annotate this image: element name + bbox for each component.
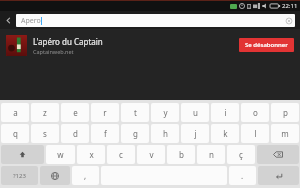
- staticText: n: [209, 149, 214, 160]
- staticText: q: [13, 128, 18, 139]
- button[interactable]: i: [211, 103, 239, 122]
- button[interactable]: L'apéro du Captain: [0, 31, 300, 59]
- button[interactable]: .: [229, 166, 256, 185]
- staticText: Apero: [21, 16, 41, 26]
- button[interactable]: ?123: [1, 166, 38, 185]
- button[interactable]: p: [271, 103, 299, 122]
- button[interactable]: v: [137, 145, 165, 164]
- button[interactable]: k: [211, 124, 239, 143]
- button[interactable]: Clear search: [282, 14, 295, 27]
- button[interactable]: Apero: [16, 14, 295, 27]
- staticText: m: [281, 128, 289, 139]
- staticText: o: [253, 107, 258, 118]
- button[interactable]: ,: [72, 166, 99, 185]
- button[interactable]: f: [91, 124, 119, 143]
- staticText: .: [241, 170, 244, 181]
- button[interactable]: Se désabonner: [239, 38, 294, 52]
- button[interactable]: a: [1, 103, 29, 122]
- staticText: v: [149, 149, 154, 160]
- button[interactable]: Shift: [1, 145, 44, 164]
- staticText: g: [133, 128, 138, 139]
- staticText: l: [254, 128, 257, 139]
- button[interactable]: g: [121, 124, 149, 143]
- staticText: ç: [239, 149, 243, 160]
- staticText: w: [57, 149, 64, 160]
- button[interactable]: w: [46, 145, 75, 164]
- button[interactable]: l: [241, 124, 269, 143]
- button[interactable]: ç: [227, 145, 255, 164]
- button[interactable]: c: [107, 145, 135, 164]
- staticText: L'apéro du Captain: [33, 36, 103, 47]
- staticText: i: [224, 107, 227, 118]
- staticText: Captainweb.net: [33, 48, 74, 55]
- staticText: ,: [84, 170, 87, 181]
- staticText: e: [73, 107, 78, 118]
- button[interactable]: s: [31, 124, 59, 143]
- staticText: x: [89, 149, 94, 160]
- staticText: r: [103, 107, 107, 118]
- button[interactable]: Backspace: [257, 145, 299, 164]
- button[interactable]: b: [167, 145, 195, 164]
- button[interactable]: Enter: [258, 166, 299, 185]
- staticText: f: [104, 128, 107, 139]
- button[interactable]: z: [31, 103, 59, 122]
- button[interactable]: m: [271, 124, 299, 143]
- button[interactable]: Back: [0, 11, 16, 29]
- staticText: z: [43, 107, 47, 118]
- button[interactable]: h: [151, 124, 179, 143]
- staticText: p: [283, 107, 288, 118]
- staticText: t: [134, 107, 137, 118]
- staticText: d: [73, 128, 78, 139]
- staticText: y: [163, 107, 168, 118]
- staticText: a: [13, 107, 18, 118]
- staticText: h: [163, 128, 168, 139]
- staticText: c: [119, 149, 123, 160]
- button[interactable]: x: [77, 145, 105, 164]
- staticText: Se désabonner: [245, 41, 288, 49]
- button[interactable]: t: [121, 103, 149, 122]
- button[interactable]: n: [197, 145, 225, 164]
- button[interactable]: Change language: [40, 166, 70, 185]
- button[interactable]: q: [1, 124, 29, 143]
- button[interactable]: e: [61, 103, 89, 122]
- button[interactable]: d: [61, 124, 89, 143]
- button[interactable]: j: [181, 124, 209, 143]
- staticText: b: [179, 149, 184, 160]
- staticText: ?123: [13, 172, 26, 180]
- button[interactable]: y: [151, 103, 179, 122]
- staticText: j: [194, 128, 197, 139]
- button[interactable]: u: [181, 103, 209, 122]
- button[interactable]: r: [91, 103, 119, 122]
- staticText: 22:11: [282, 2, 298, 10]
- staticText: k: [223, 128, 228, 139]
- staticText: u: [193, 107, 198, 118]
- button[interactable]: o: [241, 103, 269, 122]
- staticText: s: [43, 128, 47, 139]
